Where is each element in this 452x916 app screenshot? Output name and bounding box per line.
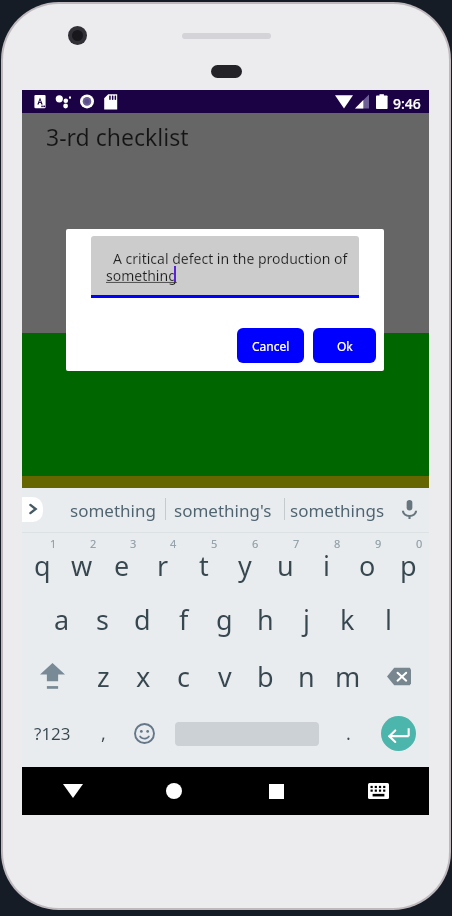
staticText: . [346,721,351,746]
button[interactable]: 5 [183,534,224,591]
staticText: b [257,658,274,695]
staticText: h [257,601,274,638]
button[interactable]: More suggestions [22,497,43,522]
button[interactable]: Cancel [237,328,304,363]
staticText: Ok [337,338,353,354]
button[interactable]: 2 [62,534,102,591]
staticText: u [277,547,294,584]
button[interactable]: Recent apps [225,767,327,815]
staticText: Cancel [252,338,290,354]
staticText: v [218,658,232,695]
button[interactable]: j [286,591,327,648]
staticText: j [303,601,310,638]
button[interactable]: d [122,591,163,648]
staticText: somethings [290,499,385,522]
staticText: 3 [130,536,137,551]
staticText: 8 [334,536,341,551]
staticText: n [298,658,315,695]
button[interactable]: n [286,648,327,705]
button[interactable] [91,236,359,295]
button[interactable] [165,705,328,762]
button[interactable]: 0 [388,534,429,591]
button[interactable]: g [204,591,245,648]
button[interactable]: something's [171,488,274,532]
staticText: 0 [416,536,423,551]
button[interactable]: m [327,648,368,705]
button[interactable]: Shift [22,648,83,705]
button[interactable]: Back [22,767,123,815]
button[interactable]: 7 [265,534,306,591]
button[interactable]: s [82,591,122,648]
button[interactable]: 8 [306,534,347,591]
button[interactable]: l [368,591,409,648]
staticText: r [157,547,169,584]
button[interactable]: Home [123,767,225,815]
button[interactable]: 3 [102,534,142,591]
button[interactable]: f [163,591,204,648]
staticText: z [97,658,110,695]
button[interactable]: Enter [368,705,429,762]
staticText: 5 [211,536,218,551]
staticText: something's [174,499,272,522]
staticText: w [71,547,93,584]
staticText: l [385,601,392,638]
staticText: m [335,658,361,695]
button[interactable]: somethings [288,488,387,532]
button[interactable]: z [83,648,123,705]
button[interactable]: c [163,648,204,705]
button[interactable]: h [245,591,286,648]
button[interactable]: Emoji [123,705,165,762]
staticText: s [96,601,109,638]
staticText: 7 [293,536,300,551]
button[interactable]: ?123 [22,705,83,762]
button[interactable]: 1 [22,534,62,591]
staticText: d [134,601,151,638]
staticText: 2 [90,536,97,551]
staticText: a [54,601,70,638]
staticText: k [340,601,355,638]
staticText: p [400,547,417,584]
staticText: g [216,601,233,638]
staticText: e [114,547,130,584]
staticText: y [238,547,252,584]
button[interactable]: x [123,648,163,705]
button[interactable]: , [83,705,123,762]
button[interactable]: . [328,705,368,762]
staticText: 4 [170,536,177,551]
staticText: x [136,658,151,695]
button[interactable]: Backspace [368,648,429,705]
staticText: q [34,547,51,584]
staticText: 6 [252,536,259,551]
button[interactable]: a [42,591,82,648]
staticText: something [106,266,177,285]
button[interactable]: something [70,488,156,532]
button[interactable]: Switch keyboard [327,767,429,815]
button[interactable]: 6 [224,534,265,591]
staticText: 9 [375,536,382,551]
staticText: , [101,721,106,746]
staticText: ?123 [34,722,71,745]
button[interactable]: v [204,648,245,705]
button[interactable]: k [327,591,368,648]
button[interactable]: Voice input [393,493,425,525]
button[interactable]: 4 [142,534,183,591]
staticText: A critical defect in the production of [113,249,348,268]
staticText: t [199,547,209,584]
staticText: o [359,547,376,584]
staticText: 9:46 [393,94,421,113]
staticText: something [70,499,156,522]
staticText: 1 [50,536,57,551]
button[interactable]: Ok [313,328,376,363]
button[interactable]: b [245,648,286,705]
staticText: c [177,658,190,695]
staticText: i [323,547,330,584]
staticText: f [179,601,189,638]
staticText: 3-rd checklist [46,121,189,152]
button[interactable]: 9 [347,534,388,591]
